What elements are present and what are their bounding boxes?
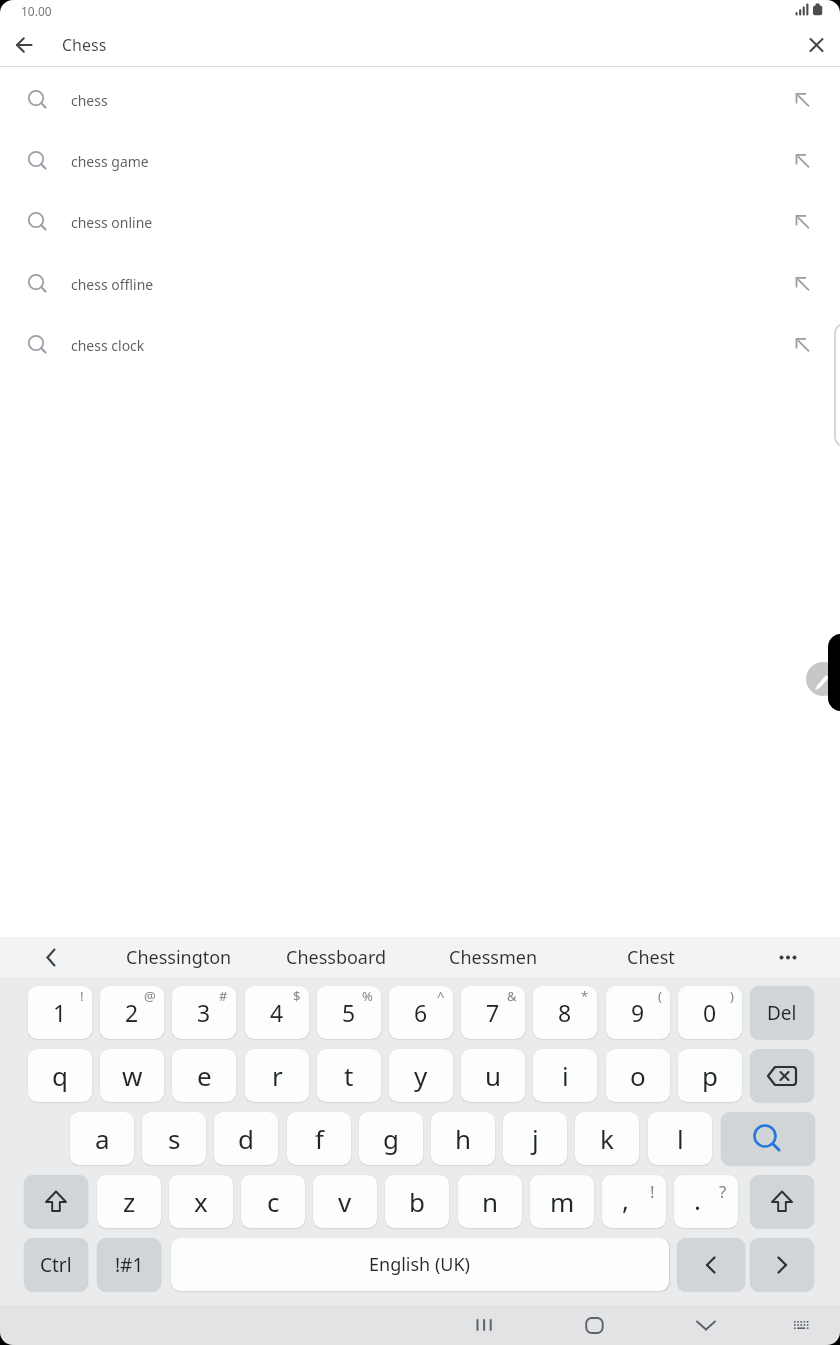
button[interactable]: v <box>313 1175 377 1228</box>
staticText: & <box>507 987 517 1005</box>
staticText: $ <box>293 987 301 1005</box>
button[interactable] <box>786 1305 816 1345</box>
button[interactable]: r <box>245 1049 309 1102</box>
button[interactable] <box>760 937 816 977</box>
button[interactable] <box>24 1175 88 1228</box>
button[interactable]: 1 <box>28 986 92 1039</box>
staticText: 0 <box>703 997 717 1028</box>
staticText: Chessmen <box>449 945 538 970</box>
staticText: * <box>581 987 589 1005</box>
button[interactable] <box>30 937 72 977</box>
button[interactable]: y <box>389 1049 453 1102</box>
button[interactable]: u <box>461 1049 525 1102</box>
button[interactable]: 2 <box>100 986 164 1039</box>
button[interactable]: j <box>503 1112 567 1165</box>
button[interactable] <box>677 1238 745 1291</box>
button[interactable]: 3 <box>172 986 236 1039</box>
button[interactable]: chess online <box>0 192 840 253</box>
button[interactable]: b <box>385 1175 449 1228</box>
button[interactable]: . <box>674 1175 738 1228</box>
button[interactable] <box>463 1305 503 1345</box>
button[interactable]: Chessmen <box>415 937 571 977</box>
staticText: r <box>272 1058 283 1093</box>
button[interactable]: Chessington <box>101 937 257 977</box>
button[interactable]: Chessboard <box>258 937 414 977</box>
staticText: chess game <box>71 152 149 171</box>
staticText: o <box>630 1058 646 1093</box>
button[interactable]: n <box>458 1175 522 1228</box>
staticText: x <box>194 1184 208 1219</box>
button[interactable]: l <box>648 1112 712 1165</box>
button[interactable]: chess game <box>0 131 840 192</box>
staticText: ! <box>80 987 84 1005</box>
staticText: z <box>123 1184 136 1219</box>
button[interactable]: s <box>142 1112 206 1165</box>
staticText: 10.00 <box>21 3 52 19</box>
button[interactable]: 9 <box>606 986 670 1039</box>
staticText: @ <box>144 987 156 1005</box>
staticText: w <box>122 1058 143 1093</box>
button[interactable]: g <box>359 1112 423 1165</box>
button[interactable]: e <box>172 1049 236 1102</box>
staticText: ? <box>719 1180 727 1203</box>
staticText: d <box>238 1121 254 1156</box>
button[interactable]: Del <box>750 986 814 1039</box>
staticText: 7 <box>486 997 500 1028</box>
staticText: q <box>52 1058 68 1093</box>
staticText: 4 <box>270 997 284 1028</box>
staticText: 6 <box>414 997 428 1028</box>
button[interactable]: Ctrl <box>24 1238 88 1291</box>
button[interactable]: 5 <box>317 986 381 1039</box>
button[interactable]: 8 <box>533 986 597 1039</box>
button[interactable] <box>721 1112 815 1165</box>
staticText: ) <box>730 987 734 1005</box>
button[interactable]: i <box>533 1049 597 1102</box>
staticText: 2 <box>125 997 139 1028</box>
button[interactable]: 0 <box>678 986 742 1039</box>
button[interactable]: d <box>214 1112 278 1165</box>
button[interactable]: m <box>530 1175 594 1228</box>
button[interactable]: o <box>606 1049 670 1102</box>
button[interactable]: !#1 <box>97 1238 161 1291</box>
staticText: k <box>600 1121 614 1156</box>
button[interactable]: p <box>678 1049 742 1102</box>
button[interactable]: Chest <box>573 937 729 977</box>
staticText: l <box>677 1121 684 1156</box>
staticText: b <box>409 1184 425 1219</box>
button[interactable]: w <box>100 1049 164 1102</box>
button[interactable]: chess clock <box>0 315 840 376</box>
button[interactable]: q <box>28 1049 92 1102</box>
button[interactable]: , <box>602 1175 666 1228</box>
staticText: Ctrl <box>40 1252 72 1278</box>
staticText: Del <box>767 1000 797 1026</box>
button[interactable] <box>750 1238 814 1291</box>
button[interactable]: 4 <box>245 986 309 1039</box>
button[interactable] <box>750 1049 814 1102</box>
button[interactable]: chess <box>0 70 840 131</box>
staticText: g <box>383 1121 399 1156</box>
staticText: chess offline <box>71 275 154 294</box>
button[interactable]: f <box>287 1112 351 1165</box>
button[interactable]: chess offline <box>0 254 840 315</box>
staticText: Chessington <box>126 945 232 970</box>
button[interactable]: t <box>317 1049 381 1102</box>
button[interactable]: z <box>97 1175 161 1228</box>
button[interactable] <box>750 1175 814 1228</box>
button[interactable]: English (UK) <box>171 1238 669 1291</box>
button[interactable]: k <box>575 1112 639 1165</box>
button[interactable]: 7 <box>461 986 525 1039</box>
staticText: v <box>338 1184 352 1219</box>
staticText: 8 <box>558 997 572 1028</box>
button[interactable]: a <box>70 1112 134 1165</box>
button[interactable]: h <box>431 1112 495 1165</box>
staticText: % <box>362 987 373 1005</box>
button[interactable]: c <box>241 1175 305 1228</box>
button[interactable] <box>574 1305 614 1345</box>
button[interactable]: 6 <box>389 986 453 1039</box>
staticText: 3 <box>197 997 211 1028</box>
button[interactable]: x <box>169 1175 233 1228</box>
button[interactable] <box>684 1305 724 1345</box>
staticText: f <box>315 1121 324 1156</box>
staticText: e <box>197 1058 212 1093</box>
staticText: chess online <box>71 213 153 232</box>
